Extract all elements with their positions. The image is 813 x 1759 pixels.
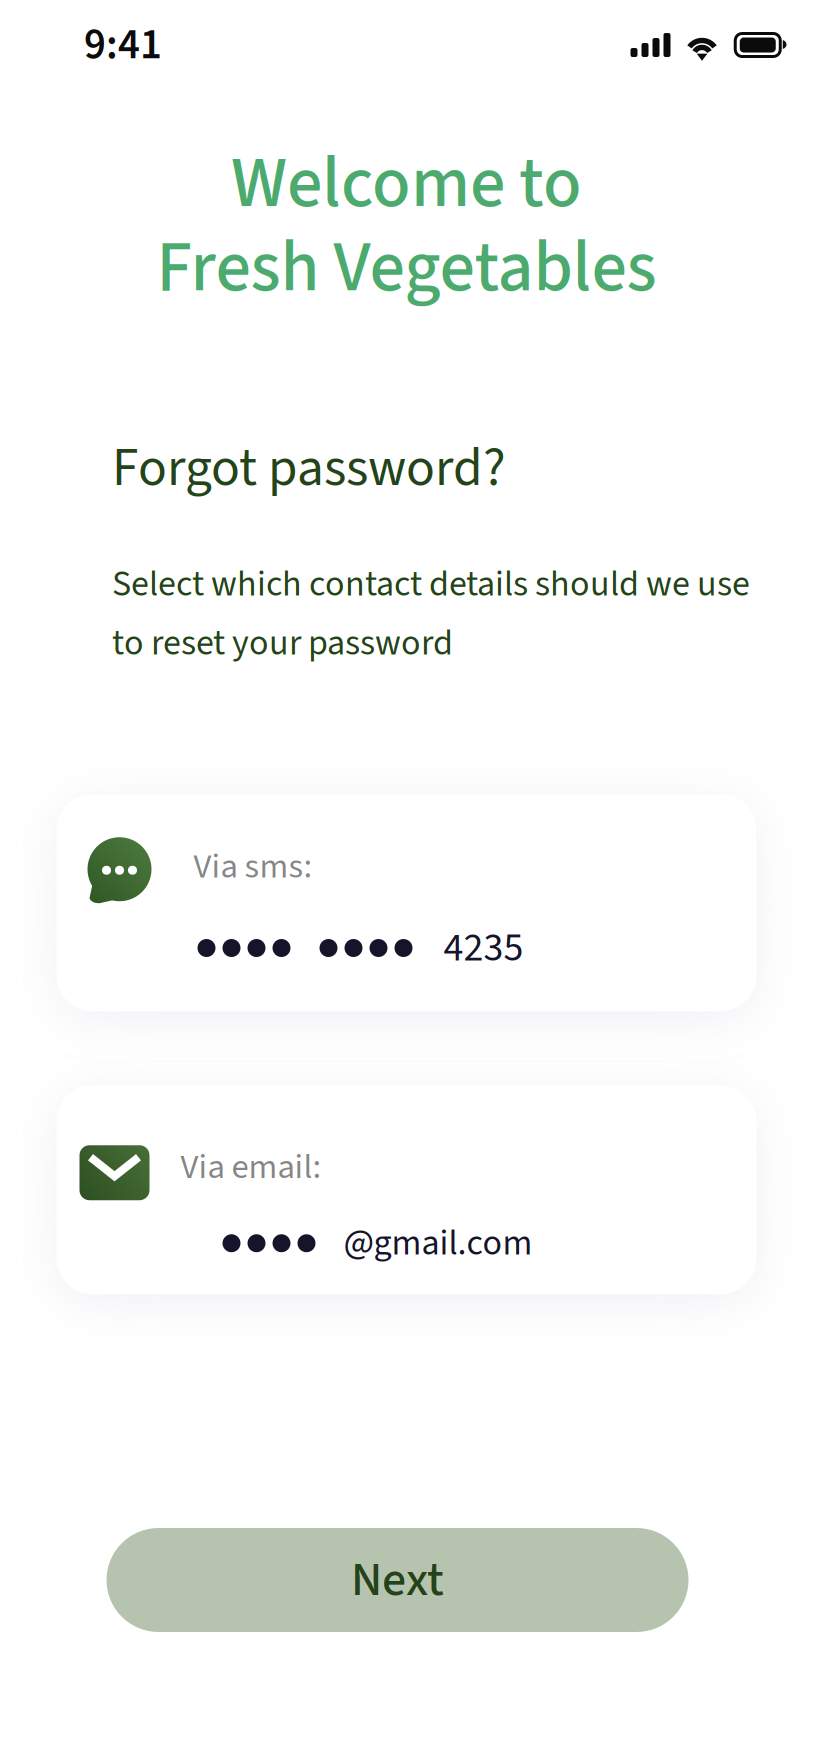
staticText: Fresh Vegetables — [156, 219, 656, 317]
staticText: Select which contact details should we u… — [112, 559, 750, 609]
button[interactable]: Next — [106, 1528, 688, 1632]
button[interactable]: Via email: — [56, 1085, 756, 1294]
staticText: Forgot password? — [112, 431, 506, 505]
staticText: 4235 — [443, 920, 523, 976]
staticText: Via sms: — [193, 843, 312, 891]
staticText: @gmail.com — [343, 1218, 532, 1268]
staticText: 9:41 — [84, 15, 162, 75]
staticText: Via email: — [180, 1143, 321, 1191]
staticText: to reset your password — [112, 618, 453, 668]
staticText: Welcome to — [231, 135, 582, 233]
staticText: Next — [351, 1547, 444, 1613]
button[interactable]: Via sms: — [56, 794, 756, 1011]
